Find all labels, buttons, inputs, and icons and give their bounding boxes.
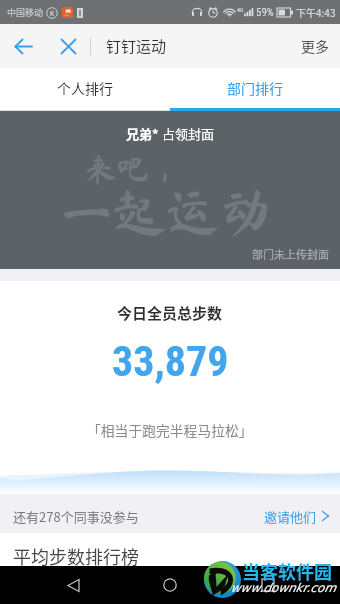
staticText: 「相当于跑完半程马拉松」: [87, 420, 253, 440]
staticText: 59%: [256, 6, 274, 19]
button[interactable]: Back: [48, 566, 98, 604]
button[interactable]: 还有278个同事没参与: [0, 494, 340, 533]
staticText: 部门排行: [227, 78, 283, 98]
staticText: 占领封面: [159, 124, 214, 143]
staticText: 33,879: [112, 337, 229, 386]
staticText: www.downkr.com: [231, 581, 337, 595]
button[interactable]: 更多: [0, 24, 340, 68]
button[interactable]: Recents: [243, 566, 293, 604]
staticText: 当客软件园: [242, 558, 332, 584]
staticText: 一起运动: [60, 185, 272, 238]
button[interactable]: Home: [145, 566, 195, 604]
staticText: 兄弟*: [126, 124, 159, 143]
staticText: 中国移动: [7, 6, 44, 19]
staticText: K: [50, 9, 55, 18]
staticText: 钉钉运动: [106, 35, 167, 57]
button[interactable]: 部门排行: [170, 68, 340, 111]
button[interactable]: Back: [0, 24, 46, 68]
staticText: 还有278个同事没参与: [13, 507, 139, 526]
staticText: 更多: [301, 36, 329, 56]
button[interactable]: 个人排行: [0, 68, 170, 111]
staticText: 来吧，: [85, 153, 182, 185]
staticText: 部门未上传封面: [252, 246, 329, 262]
staticText: 4G: [237, 6, 244, 13]
staticText: 平均步数排行榜: [13, 543, 139, 569]
staticText: 下午4:43: [296, 5, 336, 19]
button[interactable]: Close: [46, 24, 90, 68]
staticText: 邀请他们: [264, 507, 317, 526]
staticText: 今日全员总步数: [117, 302, 223, 324]
staticText: 个人排行: [57, 78, 113, 98]
